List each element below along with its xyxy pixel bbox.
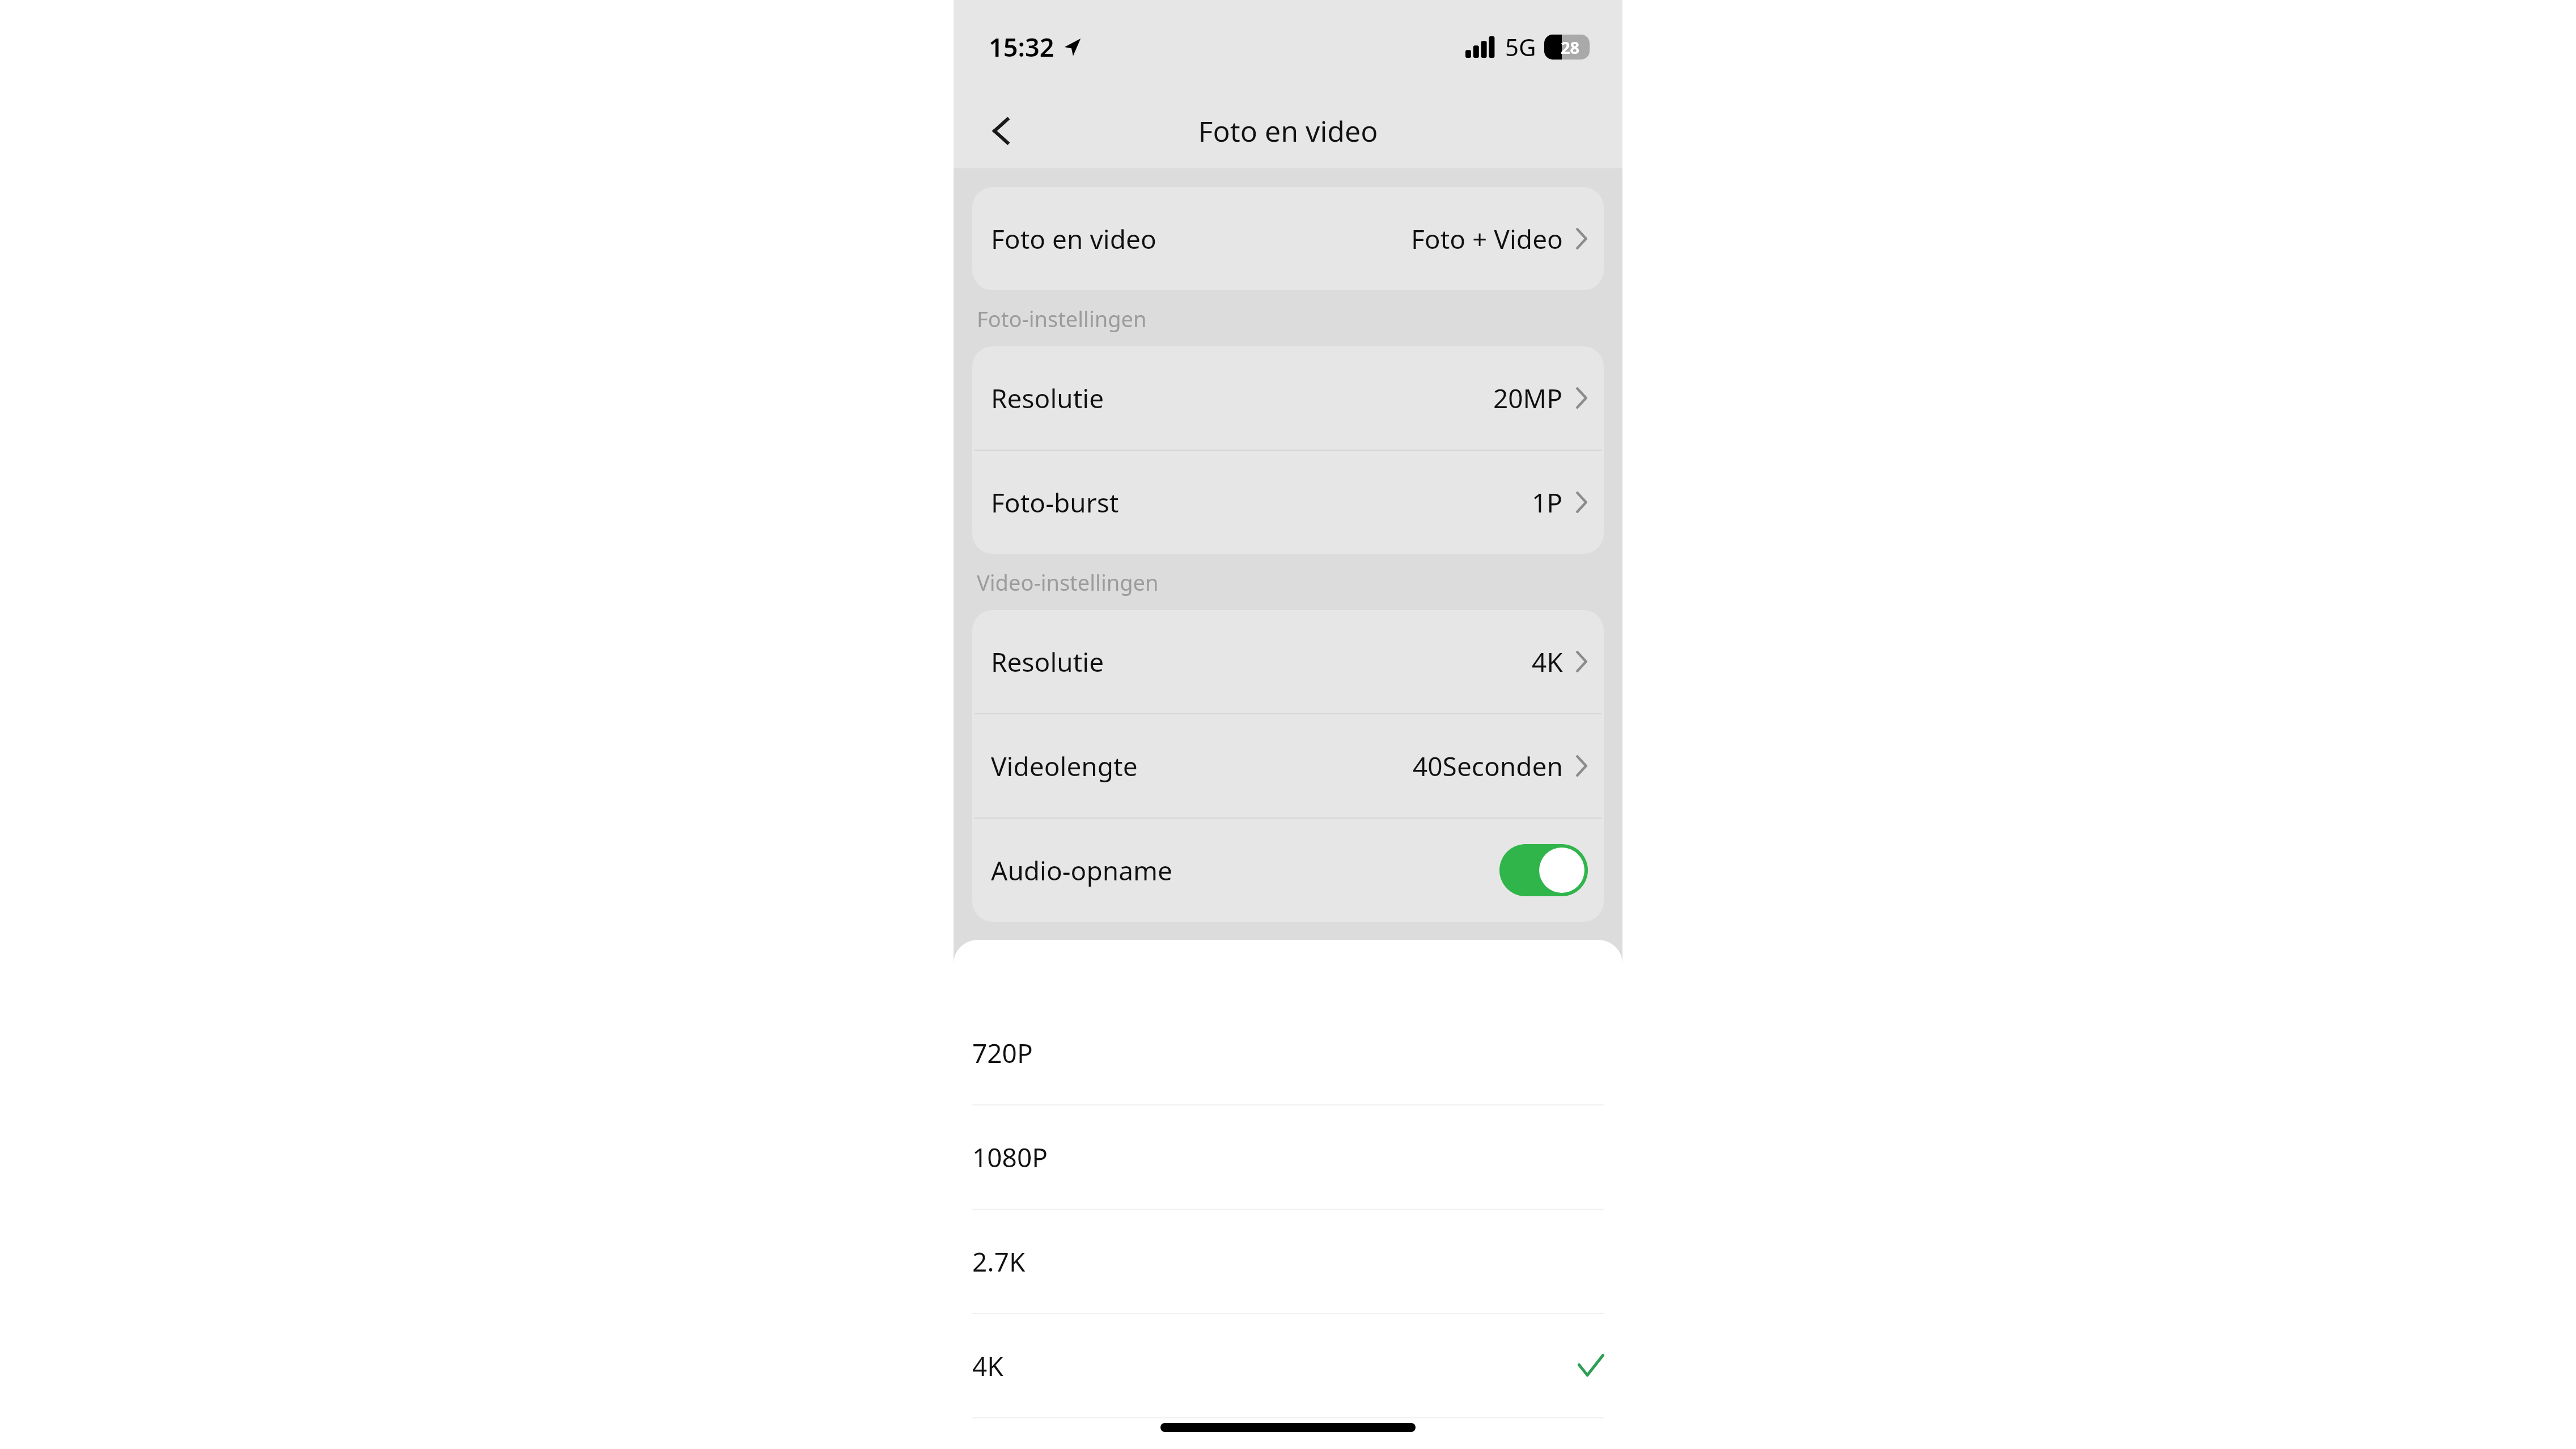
- button[interactable]: Resolutie: [972, 346, 1604, 450]
- button[interactable]: 1080P: [954, 1105, 1622, 1209]
- button[interactable]: 2.7K: [954, 1210, 1622, 1313]
- staticText: 40Seconden: [1413, 748, 1563, 784]
- staticText: 20MP: [1493, 380, 1563, 416]
- button[interactable]: 720P: [954, 1001, 1622, 1104]
- button[interactable]: Back: [975, 104, 1029, 158]
- staticText: 1P: [1532, 485, 1563, 520]
- button[interactable]: Resolutie: [972, 610, 1604, 713]
- staticText: Foto en video: [991, 221, 1156, 257]
- button[interactable]: 4K: [954, 1314, 1622, 1417]
- staticText: Foto en video: [1198, 112, 1378, 150]
- staticText: Resolutie: [991, 380, 1104, 416]
- staticText: Videolengte: [991, 748, 1138, 784]
- staticText: Video-instellingen: [977, 567, 1159, 597]
- staticText: Audio-opname: [991, 853, 1172, 888]
- staticText: 4K: [1532, 644, 1563, 680]
- staticText: 15:32: [989, 29, 1054, 64]
- staticText: 5G: [1505, 31, 1536, 63]
- staticText: Resolutie: [991, 644, 1104, 680]
- staticText: Foto-burst: [991, 485, 1119, 520]
- staticText: Foto-instellingen: [977, 304, 1147, 333]
- button[interactable]: Foto en video: [972, 187, 1604, 290]
- staticText: 4K: [972, 1348, 1003, 1384]
- button[interactable]: Foto-burst: [972, 451, 1604, 554]
- staticText: 720P: [972, 1035, 1033, 1071]
- button[interactable]: Audio-opname: [972, 819, 1604, 922]
- button[interactable]: Videolengte: [972, 714, 1604, 817]
- staticText: 1080P: [972, 1139, 1048, 1175]
- staticText: Foto + Video: [1411, 221, 1563, 257]
- staticText: 28: [1561, 36, 1580, 58]
- staticText: 2.7K: [972, 1244, 1026, 1279]
